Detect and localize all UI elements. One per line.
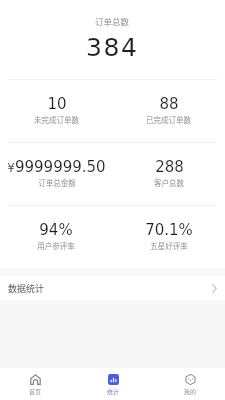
staticText: 384 — [86, 33, 139, 62]
staticText: 未完成订单数 — [34, 114, 79, 125]
button[interactable]: Profile — [155, 368, 225, 400]
staticText: ¥9999999.50 — [7, 158, 106, 175]
staticText: 订单总金额 — [38, 177, 76, 188]
staticText: 统计 — [107, 387, 120, 396]
staticText: 288 — [155, 158, 184, 175]
staticText: 首页 — [29, 387, 42, 396]
staticText: 10 — [47, 95, 67, 112]
button[interactable]: 数据统计 — [0, 276, 225, 300]
staticText: 用户参评率 — [37, 240, 75, 251]
staticText: 订单总数 — [95, 15, 130, 27]
staticText: 94% — [39, 221, 73, 238]
staticText: 客户总数 — [154, 177, 184, 188]
staticText: 已完成订单数 — [146, 114, 191, 125]
staticText: 88 — [159, 95, 179, 112]
staticText: 五星好评率 — [150, 240, 188, 251]
staticText: 数据统计 — [8, 282, 45, 295]
staticText: 我的 — [184, 387, 197, 396]
staticText: 70.1% — [145, 221, 193, 238]
button[interactable]: Home — [0, 368, 70, 400]
button[interactable]: Statistics — [78, 368, 148, 400]
